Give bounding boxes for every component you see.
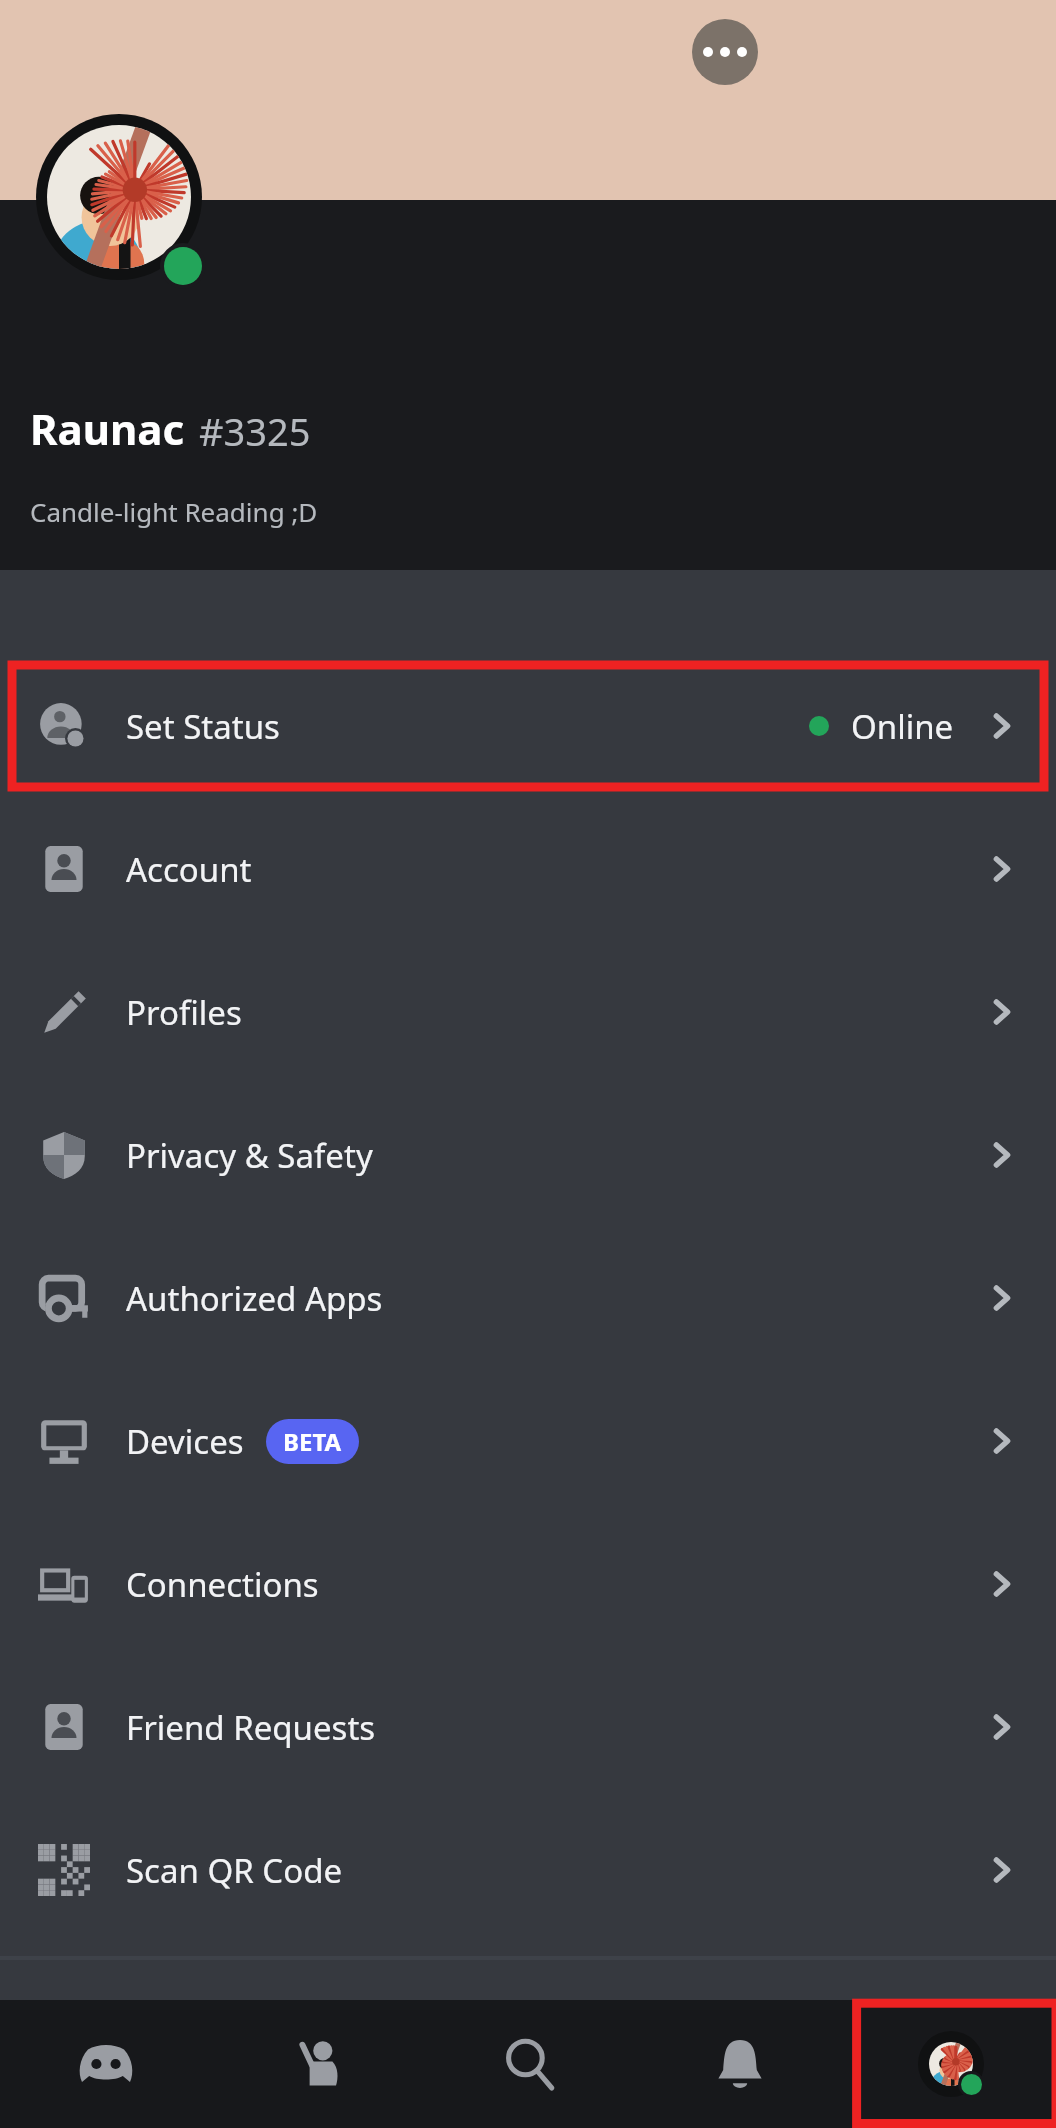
staticText: Privacy & Safety	[126, 1133, 373, 1178]
button[interactable]: Profile picture	[36, 114, 202, 280]
button[interactable]: Search	[423, 2000, 634, 2128]
staticText: Account	[126, 847, 252, 892]
staticText: Set Status	[126, 704, 280, 749]
button[interactable]: Authorized Apps	[0, 1226, 1056, 1369]
button[interactable]: Devices	[0, 1369, 1056, 1512]
button[interactable]: Home	[0, 2000, 212, 2128]
button[interactable]: Friends	[212, 2000, 423, 2128]
staticText: Online	[851, 704, 954, 749]
staticText: #3325	[199, 405, 311, 457]
button[interactable]: Account	[0, 797, 1056, 940]
staticText: Raunac	[30, 400, 185, 457]
staticText: Connections	[126, 1562, 319, 1607]
button[interactable]: You	[845, 2000, 1056, 2128]
staticText: Profiles	[126, 990, 242, 1035]
button[interactable]: Set Status	[0, 654, 1056, 797]
button[interactable]: Connections	[0, 1512, 1056, 1655]
staticText: Candle-light Reading ;D	[30, 494, 318, 529]
button[interactable]: More options	[692, 19, 758, 85]
button[interactable]: Notifications	[634, 2000, 845, 2128]
button[interactable]: Profiles	[0, 940, 1056, 1083]
button[interactable]: Privacy & Safety	[0, 1083, 1056, 1226]
staticText: BETA	[283, 1425, 342, 1458]
staticText: Scan QR Code	[126, 1848, 343, 1893]
staticText: Authorized Apps	[126, 1276, 383, 1321]
button[interactable]: Friend Requests	[0, 1655, 1056, 1798]
staticText: Friend Requests	[126, 1705, 376, 1750]
staticText: Devices	[126, 1419, 244, 1464]
button[interactable]: Scan QR Code	[0, 1798, 1056, 1941]
